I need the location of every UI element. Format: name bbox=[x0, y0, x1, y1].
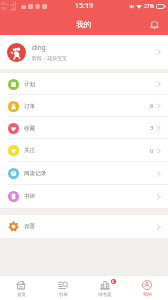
button[interactable]: Notifications bbox=[146, 16, 162, 32]
staticText: 15:19 bbox=[75, 1, 93, 11]
staticText: 订单 bbox=[24, 103, 36, 110]
staticText: 阶段：花朵宝宝 bbox=[32, 55, 67, 61]
button[interactable]: 书单 bbox=[42, 276, 84, 300]
button[interactable]: ding bbox=[0, 35, 168, 69]
staticText: 计划 bbox=[24, 81, 36, 88]
staticText: 6 bbox=[112, 279, 115, 284]
staticText: 借书架 bbox=[98, 292, 112, 298]
staticText: 6 bbox=[150, 102, 154, 110]
staticText: 2G bbox=[1, 6, 7, 11]
button[interactable]: 关注 bbox=[0, 139, 168, 162]
staticText: 收藏 bbox=[24, 125, 36, 132]
button[interactable]: 设置 bbox=[0, 215, 168, 238]
button[interactable]: 阅读记录 bbox=[0, 162, 168, 185]
staticText: 我的 bbox=[76, 19, 92, 29]
staticText: 书单 bbox=[59, 292, 68, 298]
staticText: 4G+ bbox=[1, 1, 9, 6]
button[interactable]: 6 bbox=[84, 276, 126, 300]
button[interactable]: 订单 bbox=[0, 95, 168, 117]
button[interactable]: 我的 bbox=[126, 276, 168, 300]
staticText: ding bbox=[32, 43, 46, 52]
button[interactable]: 首页 bbox=[0, 276, 42, 300]
staticText: 首页 bbox=[17, 292, 26, 298]
staticText: 27% bbox=[144, 3, 154, 10]
staticText: 0 bbox=[150, 147, 154, 155]
button[interactable]: 书评 bbox=[0, 185, 168, 208]
staticText: 关注 bbox=[24, 147, 36, 154]
staticText: 我的 bbox=[143, 292, 152, 298]
staticText: 3 bbox=[150, 124, 154, 132]
staticText: 书评 bbox=[24, 193, 36, 200]
button[interactable]: 计划 bbox=[0, 73, 168, 95]
staticText: 阅读记录 bbox=[24, 170, 47, 177]
button[interactable]: 收藏 bbox=[0, 117, 168, 139]
staticText: 设置 bbox=[24, 223, 36, 230]
